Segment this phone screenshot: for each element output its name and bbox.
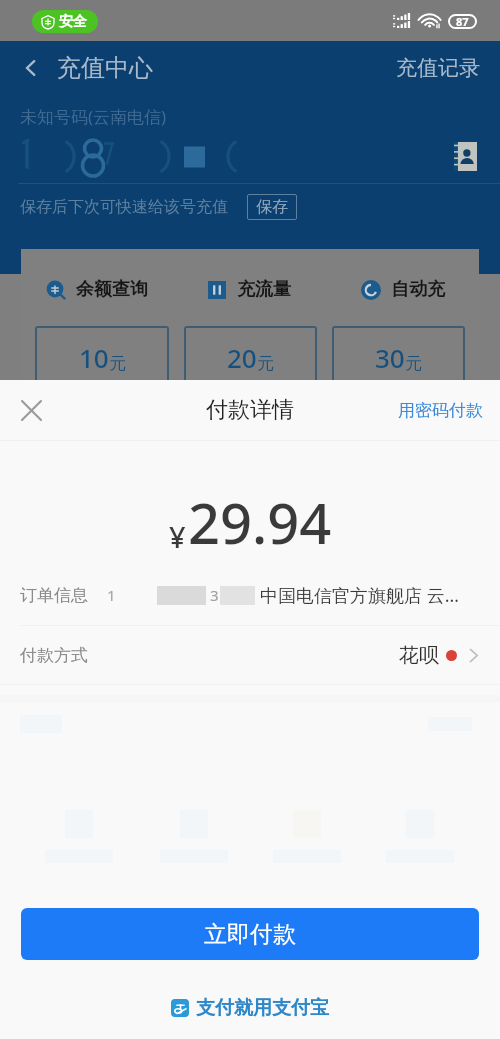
- button[interactable]: 保存: [247, 194, 297, 220]
- button[interactable]: 充流量: [208, 278, 291, 301]
- button[interactable]: 付款方式: [20, 626, 482, 684]
- staticText: 保存: [256, 197, 288, 217]
- button[interactable]: 20: [184, 326, 317, 383]
- staticText: 充值中心: [57, 53, 153, 83]
- staticText: 30: [375, 340, 405, 375]
- staticText: 未知号码(云南电信): [20, 105, 167, 128]
- staticText: 订单信息: [20, 585, 88, 606]
- button[interactable]: 30: [332, 326, 465, 383]
- staticText: 87: [456, 14, 469, 29]
- staticText: 10: [79, 340, 109, 375]
- staticText: 1: [107, 585, 116, 605]
- staticText: ¥: [169, 517, 186, 556]
- staticText: 元: [257, 353, 274, 374]
- button[interactable]: 10: [35, 326, 169, 383]
- staticText: 立即付款: [204, 920, 296, 949]
- button[interactable]: 自动充: [361, 278, 445, 301]
- button[interactable]: 用密码付款: [382, 392, 500, 429]
- staticText: 支付就用支付宝: [196, 996, 329, 1020]
- button[interactable]: Back: [18, 55, 44, 81]
- button[interactable]: 立即付款: [21, 908, 479, 960]
- button[interactable]: 充值记录: [396, 49, 480, 87]
- staticText: 充流量: [237, 278, 291, 301]
- button[interactable]: Close: [14, 393, 48, 427]
- button[interactable]: 200: [332, 398, 465, 455]
- staticText: 中国电信官方旗舰店 云…: [260, 583, 459, 608]
- staticText: 100: [222, 410, 264, 443]
- staticText: 元: [109, 353, 126, 374]
- button[interactable]: 余额查询: [46, 278, 148, 301]
- staticText: 自动充: [391, 278, 445, 301]
- staticText: 保存后下次可快速给该号充值: [20, 197, 228, 217]
- button[interactable]: Contacts: [454, 142, 477, 171]
- staticText: 充值记录: [396, 55, 480, 81]
- staticText: 余额查询: [76, 278, 148, 301]
- staticText: 20: [227, 340, 257, 375]
- staticText: 用密码付款: [398, 400, 483, 421]
- staticText: 3: [210, 585, 219, 605]
- staticText: 200: [370, 410, 412, 443]
- staticText: 29.94: [188, 484, 332, 560]
- staticText: 安全: [59, 13, 87, 31]
- button[interactable]: 订单信息: [20, 565, 482, 625]
- button[interactable]: 100: [184, 398, 317, 455]
- staticText: 元: [405, 353, 422, 374]
- staticText: 付款方式: [20, 645, 88, 666]
- staticText: 付款详情: [206, 396, 294, 424]
- button[interactable]: 50: [35, 398, 169, 455]
- staticText: 花呗: [399, 643, 439, 668]
